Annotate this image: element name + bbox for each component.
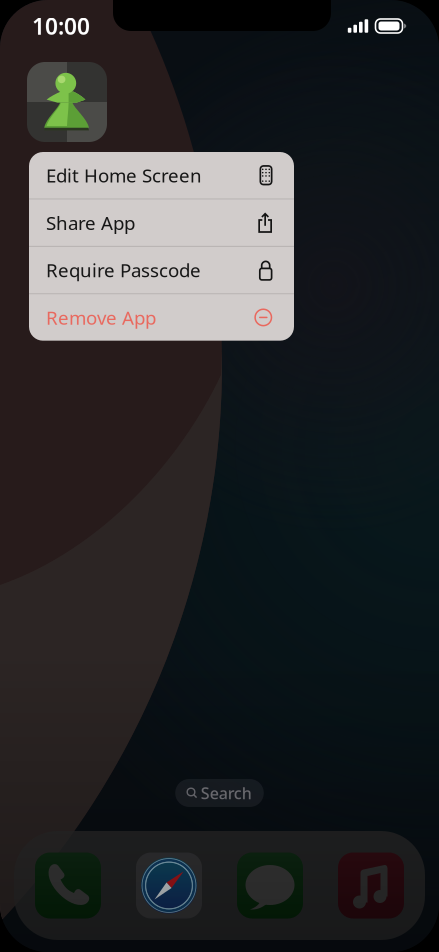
button[interactable]: Edit Home Screen bbox=[29, 152, 294, 198]
button[interactable]: Safari bbox=[136, 852, 202, 918]
button[interactable]: Search bbox=[175, 779, 264, 807]
staticText: Edit Home Screen bbox=[46, 163, 202, 188]
staticText: Share App bbox=[46, 210, 135, 235]
staticText: 10:00 bbox=[32, 11, 90, 41]
button[interactable]: Phone bbox=[35, 852, 101, 918]
button[interactable]: Music bbox=[338, 852, 404, 918]
staticText: Remove App bbox=[46, 305, 156, 330]
button[interactable]: Require Passcode bbox=[29, 247, 294, 293]
staticText: Require Passcode bbox=[46, 258, 201, 282]
staticText: Search bbox=[201, 782, 252, 804]
button[interactable]: Share App bbox=[29, 199, 294, 246]
button[interactable]: Messages bbox=[237, 852, 303, 918]
button[interactable]: Chess bbox=[27, 62, 107, 142]
button[interactable]: Remove App bbox=[29, 294, 294, 341]
